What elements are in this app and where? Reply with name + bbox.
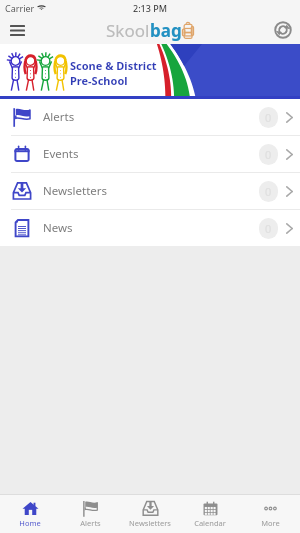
button[interactable]: Newsletters [120, 495, 180, 533]
button[interactable]: News [0, 210, 300, 246]
staticText: bag [150, 19, 182, 42]
staticText: 0 [265, 110, 272, 125]
button[interactable]: Refresh [271, 18, 295, 42]
staticText: Scone & District [70, 58, 157, 73]
staticText: 0 [265, 184, 272, 199]
staticText: Pre-School [70, 73, 128, 88]
button[interactable]: Events [0, 136, 300, 172]
staticText: Carrier [5, 2, 35, 14]
staticText: Newsletters [129, 518, 171, 528]
button[interactable]: Calendar [180, 495, 240, 533]
staticText: News [43, 220, 73, 236]
button[interactable]: Newsletters [0, 173, 300, 209]
staticText: Alerts [43, 109, 75, 125]
button[interactable]: Open navigation menu [5, 18, 29, 42]
button[interactable]: Home [0, 495, 60, 533]
staticText: 0 [265, 221, 272, 236]
staticText: 0 [265, 147, 272, 162]
staticText: Home [19, 518, 41, 528]
staticText: 2:13 PM [133, 2, 167, 14]
staticText: More [261, 518, 280, 528]
staticText: Calendar [194, 518, 226, 528]
staticText: Skool [106, 19, 150, 42]
staticText: Alerts [80, 518, 101, 528]
staticText: Newsletters [43, 183, 108, 199]
button[interactable]: Alerts [60, 495, 120, 533]
button[interactable]: More [240, 495, 300, 533]
button[interactable]: Alerts [0, 99, 300, 135]
staticText: Events [43, 146, 79, 162]
